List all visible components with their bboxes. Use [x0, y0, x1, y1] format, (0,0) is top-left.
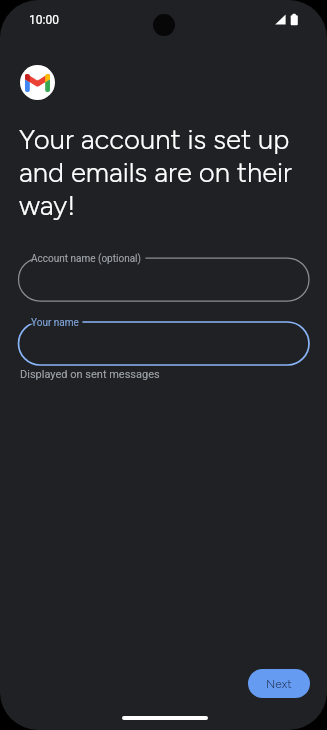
button[interactable]: Next [248, 669, 310, 698]
staticText: Displayed on sent messages [20, 368, 160, 381]
staticText: Your name [31, 317, 79, 329]
button[interactable]: Account name (optional) [18, 251, 310, 303]
staticText: Your account is set up and emails are on… [19, 123, 317, 222]
staticText: 10:00 [29, 13, 59, 27]
button[interactable]: Your name [18, 315, 310, 367]
staticText: Next [266, 677, 292, 691]
staticText: Account name (optional) [31, 253, 142, 265]
